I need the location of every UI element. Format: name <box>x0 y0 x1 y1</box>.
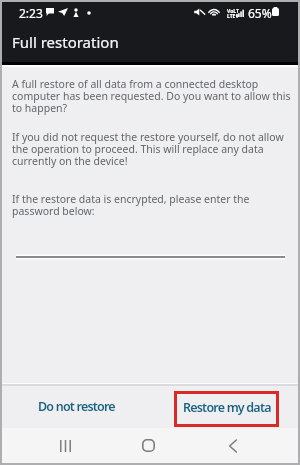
button[interactable]: Recent apps <box>46 428 84 463</box>
staticText: If you did not request the restore yours… <box>12 130 293 169</box>
staticText: LTE1 <box>227 13 239 20</box>
staticText: 65% <box>248 5 272 21</box>
button[interactable]: Do not restore <box>21 390 132 426</box>
button[interactable]: Home <box>129 428 167 463</box>
staticText: If the restore data is encrypted, please… <box>12 192 293 219</box>
button[interactable]: Back <box>214 428 252 463</box>
staticText: A full restore of all data from a connec… <box>12 77 293 116</box>
staticText: Full restoration <box>12 32 119 52</box>
button[interactable]: Restore my data <box>174 391 279 427</box>
staticText: VoLT <box>227 8 239 15</box>
staticText: Restore my data <box>183 399 271 416</box>
staticText: 2:23 <box>19 5 43 21</box>
staticText: Do not restore <box>38 398 115 415</box>
